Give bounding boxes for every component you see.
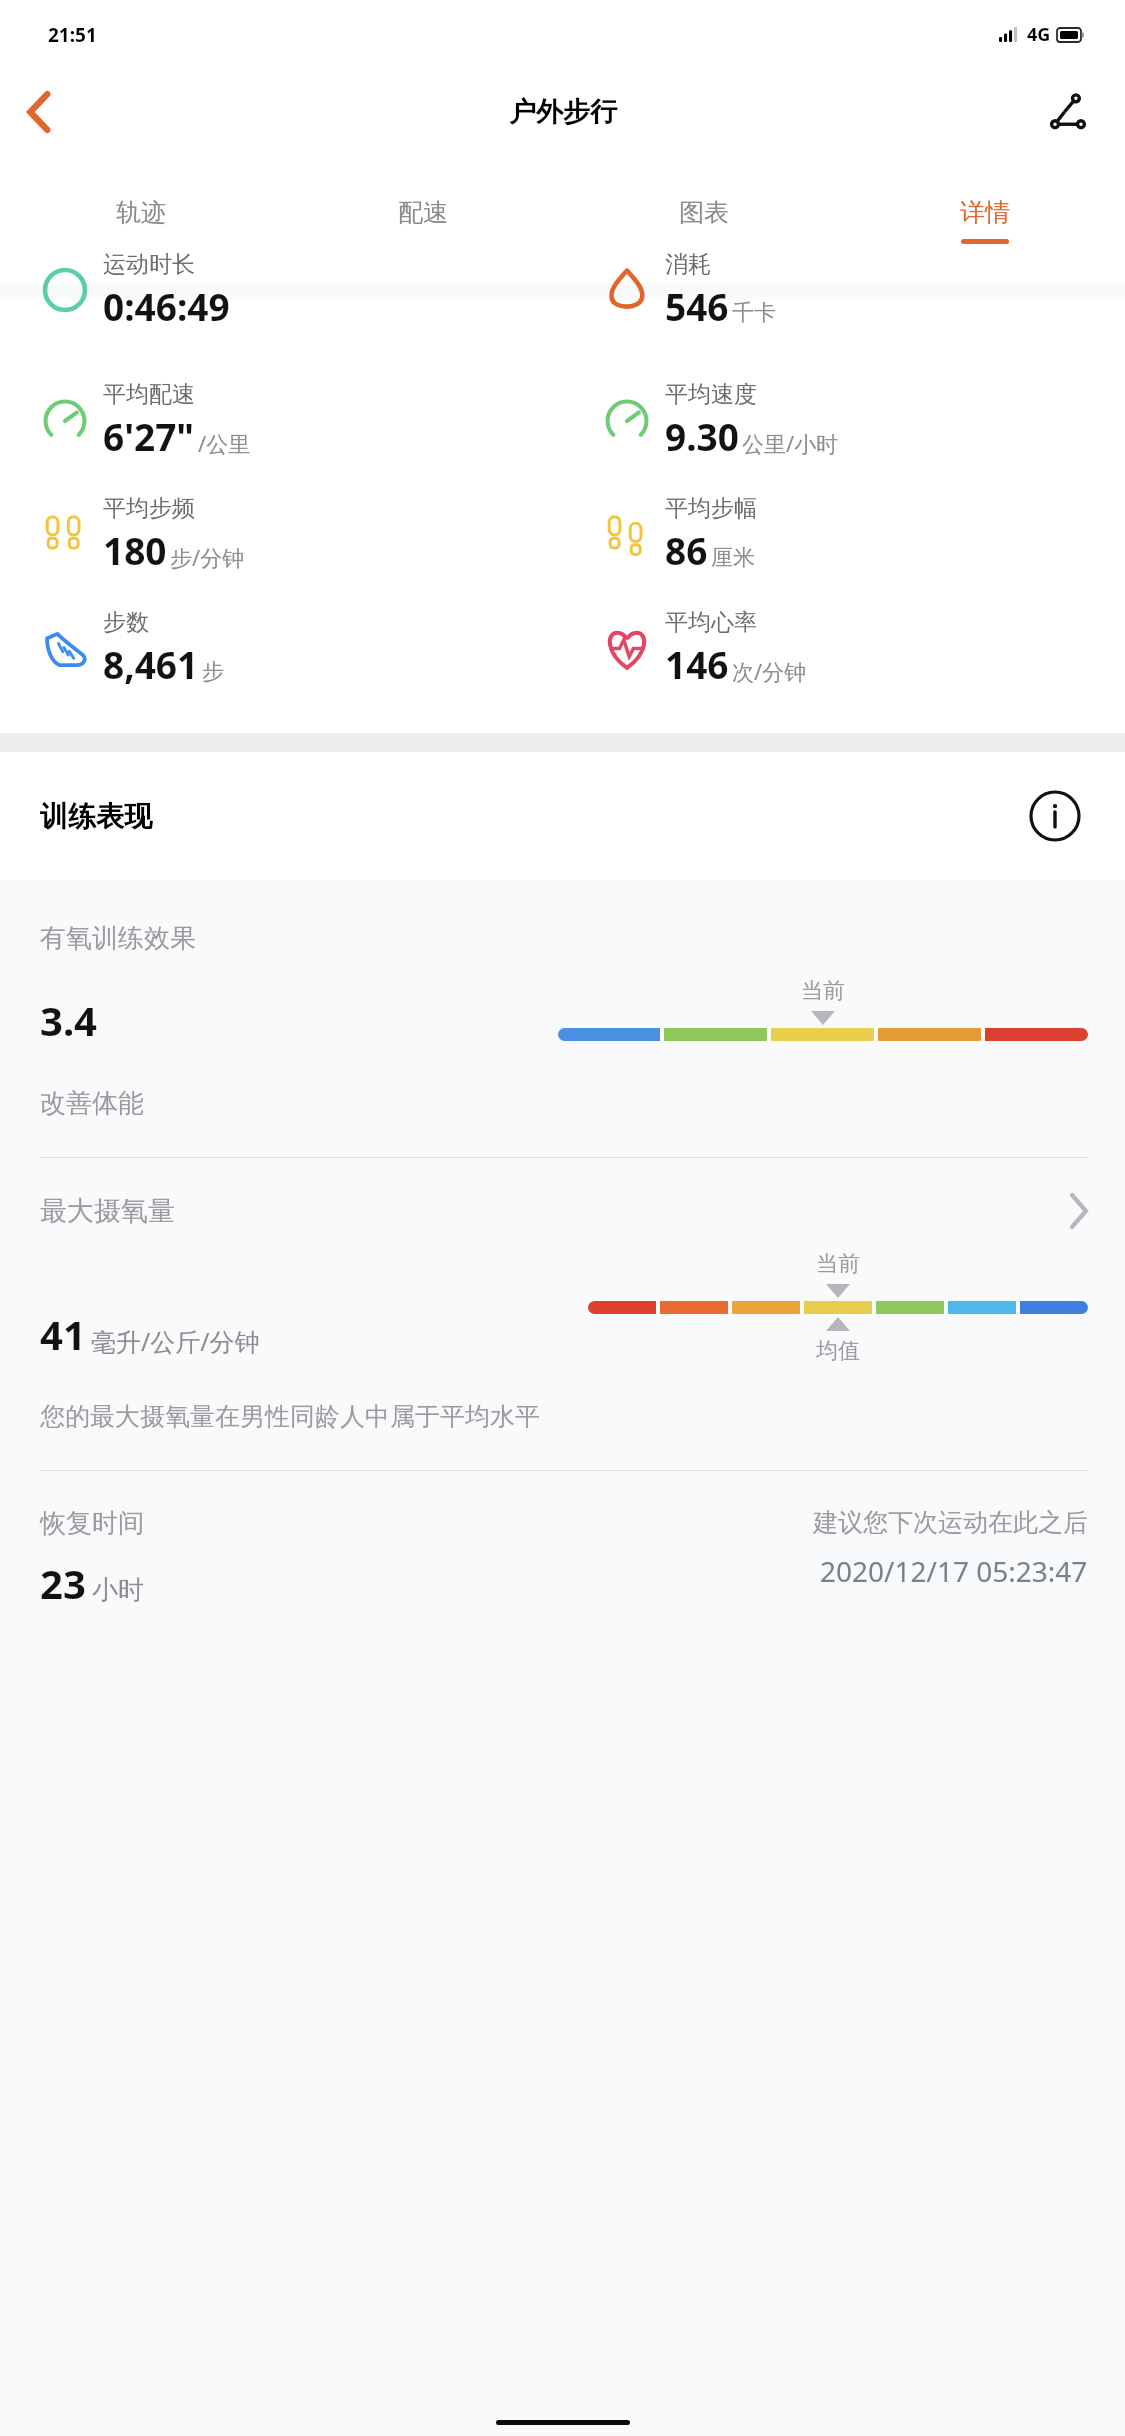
staticText: 23 (40, 1556, 86, 1610)
staticText: 步 (202, 658, 224, 686)
button[interactable]: Back (0, 73, 78, 151)
button[interactable]: 配速 (282, 158, 563, 283)
staticText: 建议您下次运动在此之后 (813, 1507, 1088, 1538)
button[interactable]: 轨迹 (0, 158, 282, 283)
staticText: 180 (103, 525, 167, 575)
staticText: 当前 (801, 977, 845, 1005)
staticText: 8,461 (103, 639, 199, 689)
staticText: 41 (40, 1307, 86, 1361)
staticText: 3.4 (40, 993, 97, 1047)
staticText: 平均心率 (665, 608, 757, 637)
button[interactable]: Share route (1037, 81, 1099, 143)
staticText: 配速 (398, 197, 448, 228)
button[interactable]: 图表 (563, 158, 844, 283)
staticText: 当前 (816, 1250, 860, 1278)
staticText: 您的最大摄氧量在男性同龄人中属于平均水平 (40, 1401, 540, 1432)
staticText: 运动时长 (103, 250, 195, 279)
staticText: 9.30 (665, 411, 739, 461)
staticText: 2020/12/17 05:23:47 (820, 1552, 1088, 1590)
staticText: 小时 (92, 1574, 144, 1607)
staticText: 改善体能 (40, 1087, 144, 1120)
staticText: 公里/小时 (742, 428, 839, 458)
staticText: 步/分钟 (170, 542, 245, 572)
staticText: 次/分钟 (732, 656, 807, 686)
staticText: 4G (1027, 22, 1051, 47)
staticText: 毫升/公斤/分钟 (91, 1324, 260, 1358)
staticText: 消耗 (665, 250, 711, 279)
staticText: 86 (665, 525, 708, 575)
button[interactable]: 详情 (844, 158, 1125, 283)
staticText: 最大摄氧量 (40, 1194, 175, 1228)
staticText: 平均速度 (665, 380, 757, 409)
staticText: 均值 (816, 1337, 860, 1365)
staticText: 步数 (103, 608, 149, 637)
staticText: 546 (665, 281, 729, 330)
staticText: 21:51 (48, 22, 97, 48)
staticText: 轨迹 (116, 197, 166, 228)
staticText: 详情 (960, 197, 1010, 228)
staticText: 6'27" (103, 411, 195, 461)
button[interactable]: Info (1025, 786, 1085, 846)
staticText: 训练表现 (40, 799, 152, 834)
staticText: 平均步频 (103, 494, 195, 523)
staticText: 千卡 (732, 299, 776, 327)
button[interactable]: 最大摄氧量 (40, 1194, 1088, 1228)
staticText: 户外步行 (509, 95, 617, 129)
staticText: /公里 (198, 428, 251, 458)
staticText: 平均配速 (103, 380, 195, 409)
staticText: 有氧训练效果 (40, 922, 196, 955)
staticText: 146 (665, 639, 729, 689)
staticText: 恢复时间 (40, 1507, 144, 1540)
staticText: 平均步幅 (665, 494, 757, 523)
staticText: 厘米 (711, 544, 755, 572)
staticText: 0:46:49 (103, 281, 230, 330)
staticText: 图表 (679, 197, 729, 228)
